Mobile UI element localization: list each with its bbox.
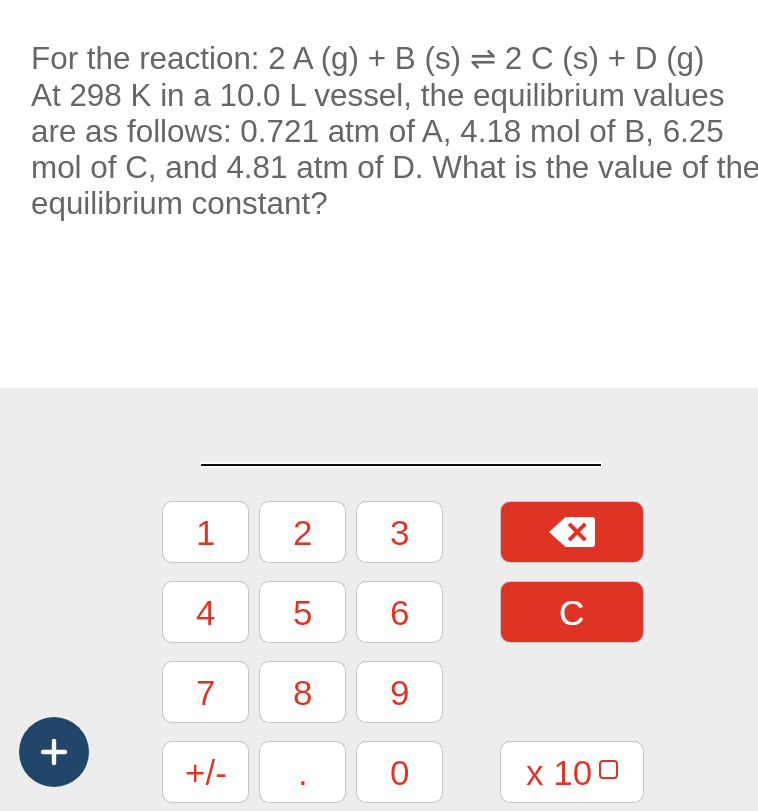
button[interactable]: C: [501, 582, 643, 642]
button[interactable]: 4: [163, 582, 248, 642]
staticText: .: [298, 753, 308, 792]
staticText: 0: [390, 753, 410, 792]
staticText: 2: [293, 513, 313, 552]
staticText: 7: [196, 673, 216, 712]
staticText: +/-: [185, 753, 227, 792]
button[interactable]: Add: [19, 717, 89, 787]
button[interactable]: 9: [357, 662, 442, 722]
button[interactable]: Backspace: [501, 502, 643, 562]
button[interactable]: 7: [163, 662, 248, 722]
staticText: 8: [293, 673, 313, 712]
button[interactable]: .: [260, 742, 345, 802]
button[interactable]: 2: [260, 502, 345, 562]
staticText: x 10: [526, 753, 593, 792]
button[interactable]: 8: [260, 662, 345, 722]
button[interactable]: 0: [357, 742, 442, 802]
button[interactable]: 5: [260, 582, 345, 642]
staticText: 4: [196, 593, 216, 632]
staticText: C: [559, 593, 585, 632]
button[interactable]: 3: [357, 502, 442, 562]
staticText: 6: [390, 593, 410, 632]
staticText: 1: [196, 513, 216, 552]
staticText: For the reaction: 2 A (g) + B (s) ⇌ 2 C …: [31, 40, 758, 221]
staticText: 5: [293, 593, 313, 632]
staticText: 3: [390, 513, 410, 552]
button[interactable]: +/-: [163, 742, 248, 802]
button[interactable]: 1: [163, 502, 248, 562]
button[interactable]: Times ten to the power: [501, 742, 643, 802]
staticText: 9: [390, 673, 410, 712]
button[interactable]: 6: [357, 582, 442, 642]
